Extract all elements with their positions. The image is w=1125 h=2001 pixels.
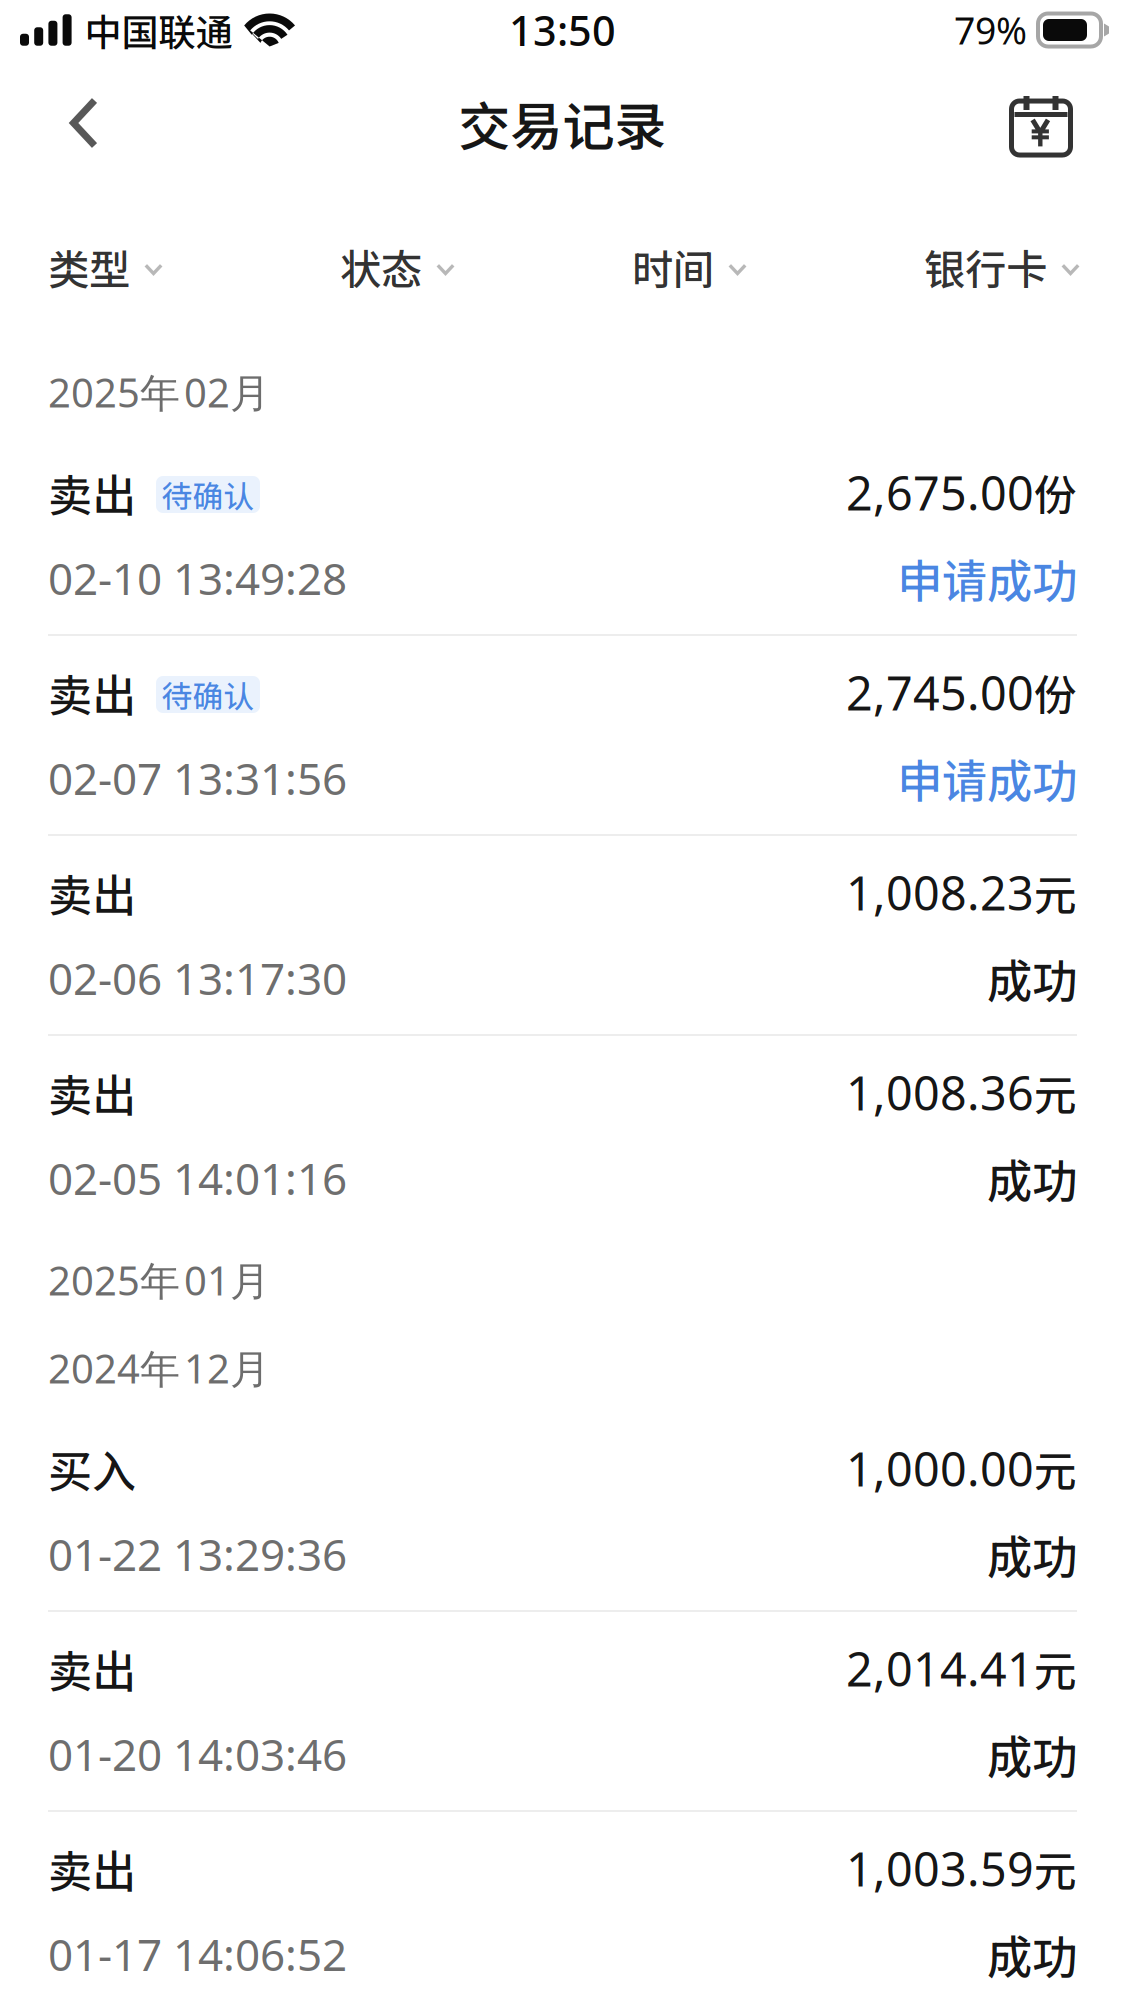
staticText: 02-07 13:31:56	[48, 749, 347, 807]
staticText: 成功	[987, 1721, 1077, 1787]
button[interactable]: 卖出	[0, 1812, 1125, 2001]
staticText: 元	[1034, 1838, 1077, 1899]
button[interactable]: 返回	[32, 60, 136, 186]
staticText: 元	[1034, 1062, 1077, 1123]
staticText: 元	[1034, 1438, 1077, 1499]
staticText: 01-17 14:06:52	[48, 1925, 347, 1983]
staticText: 01-20 14:03:46	[48, 1725, 347, 1783]
staticText: 时间	[632, 237, 714, 297]
staticText: 中国联通	[85, 3, 233, 57]
staticText: 1,000.00	[846, 1437, 1034, 1499]
staticText: 卖出	[48, 861, 136, 924]
staticText: 元	[1034, 1638, 1077, 1699]
button[interactable]: 状态	[340, 186, 455, 348]
staticText: 卖出	[48, 461, 136, 524]
button[interactable]: 卖出	[0, 436, 1125, 636]
staticText: 申请成功	[897, 545, 1077, 611]
staticText: 成功	[987, 945, 1077, 1011]
staticText: 卖出	[48, 1061, 136, 1124]
staticText: 成功	[987, 1521, 1077, 1587]
staticText: 2025年 01月	[48, 1253, 270, 1306]
staticText: 元	[1034, 862, 1077, 923]
staticText: 1,008.36	[846, 1061, 1034, 1123]
staticText: 2025年 02月	[48, 365, 270, 418]
staticText: 成功	[987, 1145, 1077, 1211]
staticText: 买入	[48, 1437, 136, 1500]
staticText: 成功	[987, 1921, 1077, 1987]
staticText: 卖出	[48, 1837, 136, 1900]
staticText: 01-22 13:29:36	[48, 1525, 347, 1583]
button[interactable]: 银行卡	[924, 186, 1080, 348]
button[interactable]: 卖出	[0, 636, 1125, 836]
button[interactable]: 时间	[632, 186, 747, 348]
staticText: 2,745.00	[846, 661, 1034, 723]
button[interactable]: 类型	[48, 186, 163, 348]
staticText: 份	[1034, 662, 1077, 723]
staticText: 2024年 12月	[48, 1341, 270, 1394]
staticText: 79%	[954, 5, 1027, 55]
button[interactable]: 买入	[0, 1412, 1125, 1612]
staticText: 份	[1034, 462, 1077, 523]
button[interactable]: 卖出	[0, 1036, 1125, 1236]
staticText: 2,014.41	[846, 1637, 1034, 1699]
staticText: 交易记录	[458, 85, 666, 161]
button[interactable]: 按日期筛选	[989, 60, 1093, 186]
staticText: 02-06 13:17:30	[48, 949, 347, 1007]
staticText: 待确认	[161, 672, 254, 717]
button[interactable]: 卖出	[0, 836, 1125, 1036]
staticText: 02-10 13:49:28	[48, 549, 347, 607]
button[interactable]: 卖出	[0, 1612, 1125, 1812]
staticText: 银行卡	[924, 237, 1047, 297]
staticText: 卖出	[48, 661, 136, 724]
staticText: 状态	[340, 237, 422, 297]
staticText: 1,008.23	[846, 861, 1034, 923]
staticText: 卖出	[48, 1637, 136, 1700]
staticText: 2,675.00	[846, 461, 1034, 523]
staticText: 1,003.59	[846, 1837, 1034, 1899]
staticText: 13:50	[509, 3, 616, 57]
staticText: 02-05 14:01:16	[48, 1149, 347, 1207]
staticText: 待确认	[161, 472, 254, 517]
staticText: 类型	[48, 237, 130, 297]
staticText: 申请成功	[897, 745, 1077, 811]
